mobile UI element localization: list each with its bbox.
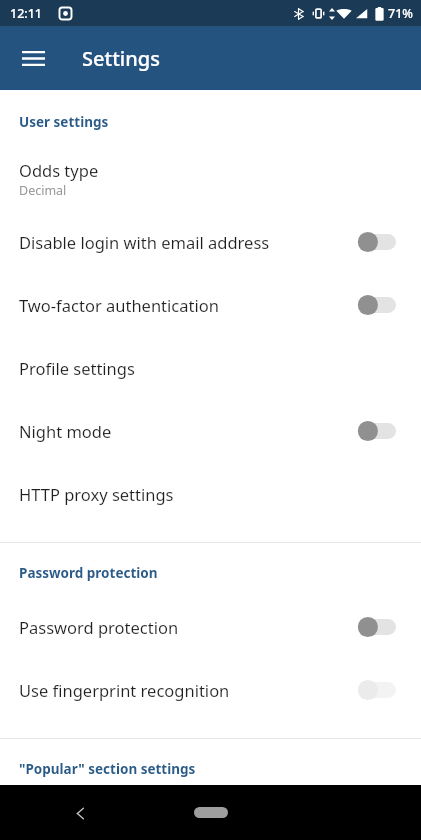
button[interactable]: Back xyxy=(60,793,100,833)
button[interactable]: Odds type xyxy=(0,147,421,210)
staticText: 12:11 xyxy=(10,5,43,22)
staticText: User settings xyxy=(19,113,405,131)
button[interactable]: Night mode xyxy=(0,399,421,462)
button[interactable]: Disable login with email address xyxy=(0,210,421,273)
button[interactable]: Password protection xyxy=(0,595,421,658)
button[interactable]: Profile settings xyxy=(0,336,421,399)
staticText: Two-factor authentication xyxy=(19,294,348,316)
staticText: Night mode xyxy=(19,420,348,442)
staticText: "Popular" section settings xyxy=(19,760,405,778)
button[interactable]: Use fingerprint recognition xyxy=(0,658,421,721)
staticText: Password protection xyxy=(19,564,405,582)
staticText: HTTP proxy settings xyxy=(19,483,174,505)
button[interactable]: Open navigation menu xyxy=(11,36,55,80)
staticText: Settings xyxy=(82,45,160,72)
button[interactable]: HTTP proxy settings xyxy=(0,462,421,525)
staticText: Odds type xyxy=(19,159,99,181)
staticText: Profile settings xyxy=(19,357,135,379)
staticText: Disable login with email address xyxy=(19,231,348,253)
button[interactable]: Two-factor authentication xyxy=(0,273,421,336)
staticText: Password protection xyxy=(19,616,348,638)
staticText: Use fingerprint recognition xyxy=(19,679,348,701)
staticText: 71% xyxy=(388,5,413,22)
button[interactable]: Home xyxy=(194,807,228,818)
staticText: Decimal xyxy=(19,182,67,199)
